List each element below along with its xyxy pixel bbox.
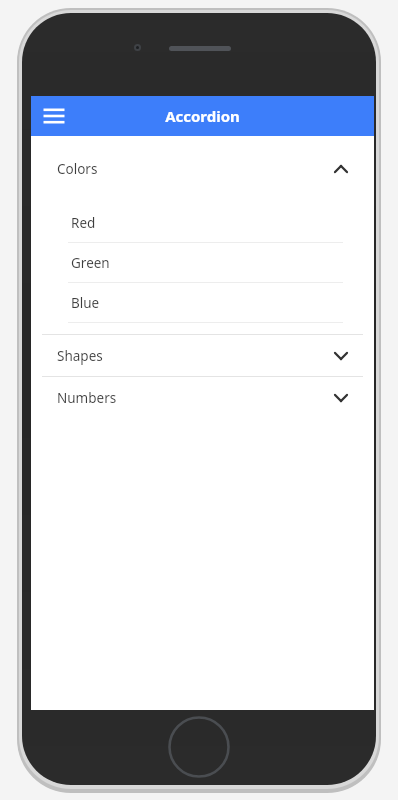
staticText: Blue — [71, 294, 100, 312]
staticText: Accordion — [165, 106, 240, 126]
button[interactable]: Green — [31, 243, 374, 283]
staticText: Red — [71, 214, 96, 232]
button[interactable]: Red — [31, 203, 374, 243]
button[interactable]: Numbers — [31, 377, 374, 418]
button[interactable]: Blue — [31, 283, 374, 323]
staticText: Green — [71, 254, 110, 272]
button[interactable]: Colors — [31, 148, 374, 189]
button[interactable]: Open navigation menu — [37, 99, 71, 133]
staticText: Shapes — [57, 347, 103, 365]
button[interactable]: Shapes — [31, 335, 374, 376]
staticText: Numbers — [57, 389, 117, 407]
staticText: Colors — [57, 160, 98, 178]
